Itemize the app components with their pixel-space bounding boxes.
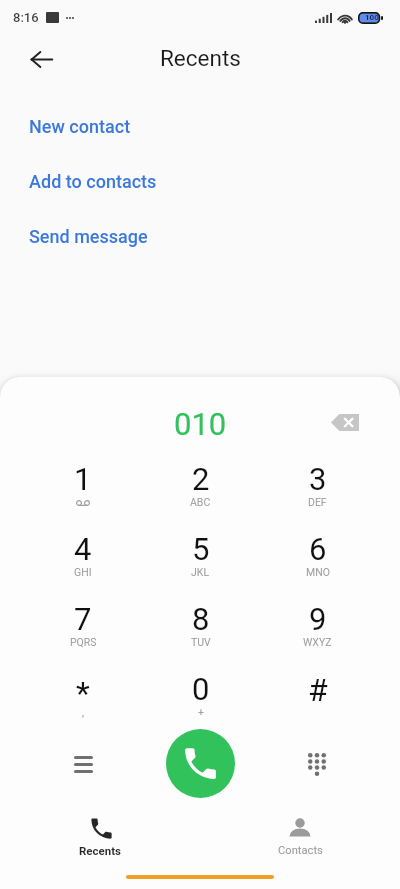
staticText: GHI — [74, 566, 92, 578]
staticText: Recents — [160, 45, 241, 71]
button[interactable]: # — [259, 671, 376, 741]
staticText: PQRS — [70, 636, 97, 648]
staticText: Contacts — [278, 844, 323, 857]
staticText: WXYZ — [303, 636, 332, 648]
button[interactable]: Menu — [61, 741, 105, 785]
button[interactable]: Contacts — [200, 817, 400, 879]
staticText: 5 — [192, 531, 210, 567]
staticText: MNO — [306, 566, 330, 578]
staticText: # — [308, 671, 328, 709]
staticText: Recents — [79, 844, 122, 857]
button[interactable]: Send message — [0, 213, 400, 261]
staticText: 7 — [74, 601, 92, 637]
staticText: + — [198, 706, 204, 718]
staticText: 2 — [192, 461, 210, 497]
button[interactable]: 3 — [259, 461, 376, 531]
button[interactable]: 8 — [142, 601, 259, 671]
staticText: 0 — [192, 671, 210, 707]
button[interactable]: 0 — [142, 671, 259, 741]
button[interactable]: Dialpad — [294, 741, 338, 785]
button[interactable]: 2 — [142, 461, 259, 531]
staticText: , — [82, 706, 85, 718]
staticText: 8 — [192, 601, 210, 637]
button[interactable]: Backspace — [323, 400, 367, 444]
button[interactable]: New contact — [0, 103, 400, 151]
button[interactable]: 1 — [24, 461, 142, 531]
button[interactable]: Call — [166, 729, 235, 798]
button[interactable]: Add to contacts — [0, 158, 400, 206]
staticText: New contact — [29, 116, 131, 137]
staticText: TUV — [191, 636, 211, 648]
staticText: 1 — [74, 461, 92, 497]
staticText: 4 — [74, 531, 92, 567]
staticText: ABC — [190, 496, 211, 508]
button[interactable]: * — [24, 671, 142, 741]
staticText: 8:16 — [13, 10, 39, 25]
button[interactable]: 5 — [142, 531, 259, 601]
staticText: 100 — [365, 13, 379, 22]
staticText: Send message — [29, 226, 148, 247]
button[interactable]: Back — [20, 38, 62, 80]
staticText: 6 — [309, 531, 327, 567]
staticText: Add to contacts — [29, 171, 157, 192]
button[interactable]: 7 — [24, 601, 142, 671]
button[interactable]: Recents — [0, 817, 200, 879]
staticText: DEF — [308, 496, 327, 508]
staticText: JKL — [191, 566, 210, 578]
staticText: 3 — [309, 461, 327, 497]
staticText: 010 — [174, 406, 227, 442]
button[interactable]: 6 — [259, 531, 376, 601]
button[interactable]: 9 — [259, 601, 376, 671]
button[interactable]: 4 — [24, 531, 142, 601]
staticText: 9 — [309, 601, 327, 637]
staticText: * — [76, 674, 90, 712]
